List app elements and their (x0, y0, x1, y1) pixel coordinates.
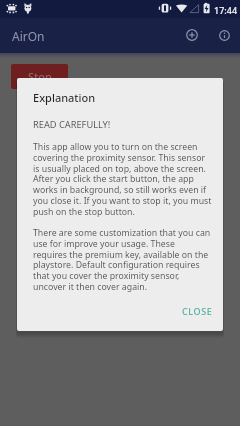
staticText: There are some customization that you ca… (33, 227, 215, 261)
staticText: After you click the start button, the ap… (33, 173, 215, 218)
staticText: This app allow you to turn on the screen… (33, 141, 215, 175)
staticText: AirOn (12, 28, 45, 44)
staticText: Stop (28, 69, 52, 84)
staticText: CLOSE (182, 305, 213, 317)
button[interactable]: Stop (11, 64, 68, 89)
staticText: READ CAREFULLY! (33, 118, 111, 131)
button[interactable]: Add (178, 21, 206, 49)
button[interactable]: CLOSE (176, 301, 219, 321)
staticText: Explanation (33, 90, 96, 105)
staticText: playstore. Default configuration require… (33, 259, 215, 293)
staticText: 17:44 (214, 4, 238, 16)
button[interactable]: Info (210, 21, 238, 49)
